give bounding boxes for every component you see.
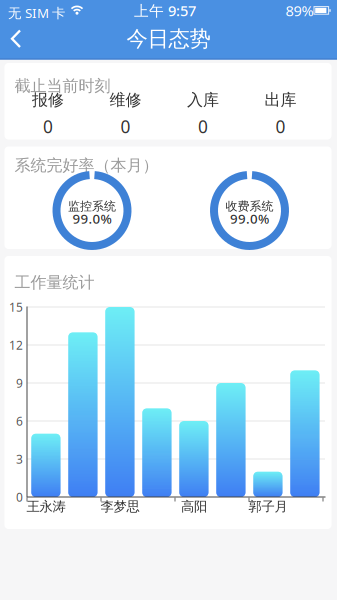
staticText: 监控系统 xyxy=(68,199,116,214)
staticText: 郭子月 xyxy=(248,498,287,515)
staticText: 上午 9:57 xyxy=(134,1,196,20)
staticText: 89% xyxy=(285,1,313,20)
staticText: 无 SIM 卡 xyxy=(8,4,65,22)
staticText: 0 xyxy=(275,115,285,138)
staticText: 王永涛 xyxy=(26,498,65,515)
staticText: 0 xyxy=(16,489,23,505)
staticText: 12 xyxy=(9,337,23,353)
staticText: 高阳 xyxy=(181,498,207,515)
staticText: 0 xyxy=(43,115,53,138)
staticText: 维修 xyxy=(109,90,141,110)
staticText: 99.0% xyxy=(230,210,269,227)
staticText: 李梦思 xyxy=(100,498,139,515)
staticText: 0 xyxy=(120,115,130,138)
staticText: 收费系统 xyxy=(225,199,273,214)
staticText: 9 xyxy=(16,375,23,391)
staticText: 99.0% xyxy=(72,210,111,227)
staticText: 系统完好率（本月） xyxy=(14,155,158,175)
staticText: 入库 xyxy=(187,90,219,110)
staticText: 6 xyxy=(16,413,23,429)
button[interactable]: Back xyxy=(0,20,36,59)
staticText: 出库 xyxy=(264,90,296,110)
staticText: 15 xyxy=(9,299,23,315)
staticText: 工作量统计 xyxy=(14,272,94,292)
staticText: 3 xyxy=(16,451,23,467)
staticText: 报修 xyxy=(32,90,64,110)
staticText: 截止当前时刻 xyxy=(14,76,110,96)
staticText: 0 xyxy=(198,115,208,138)
staticText: 今日态势 xyxy=(126,26,210,52)
